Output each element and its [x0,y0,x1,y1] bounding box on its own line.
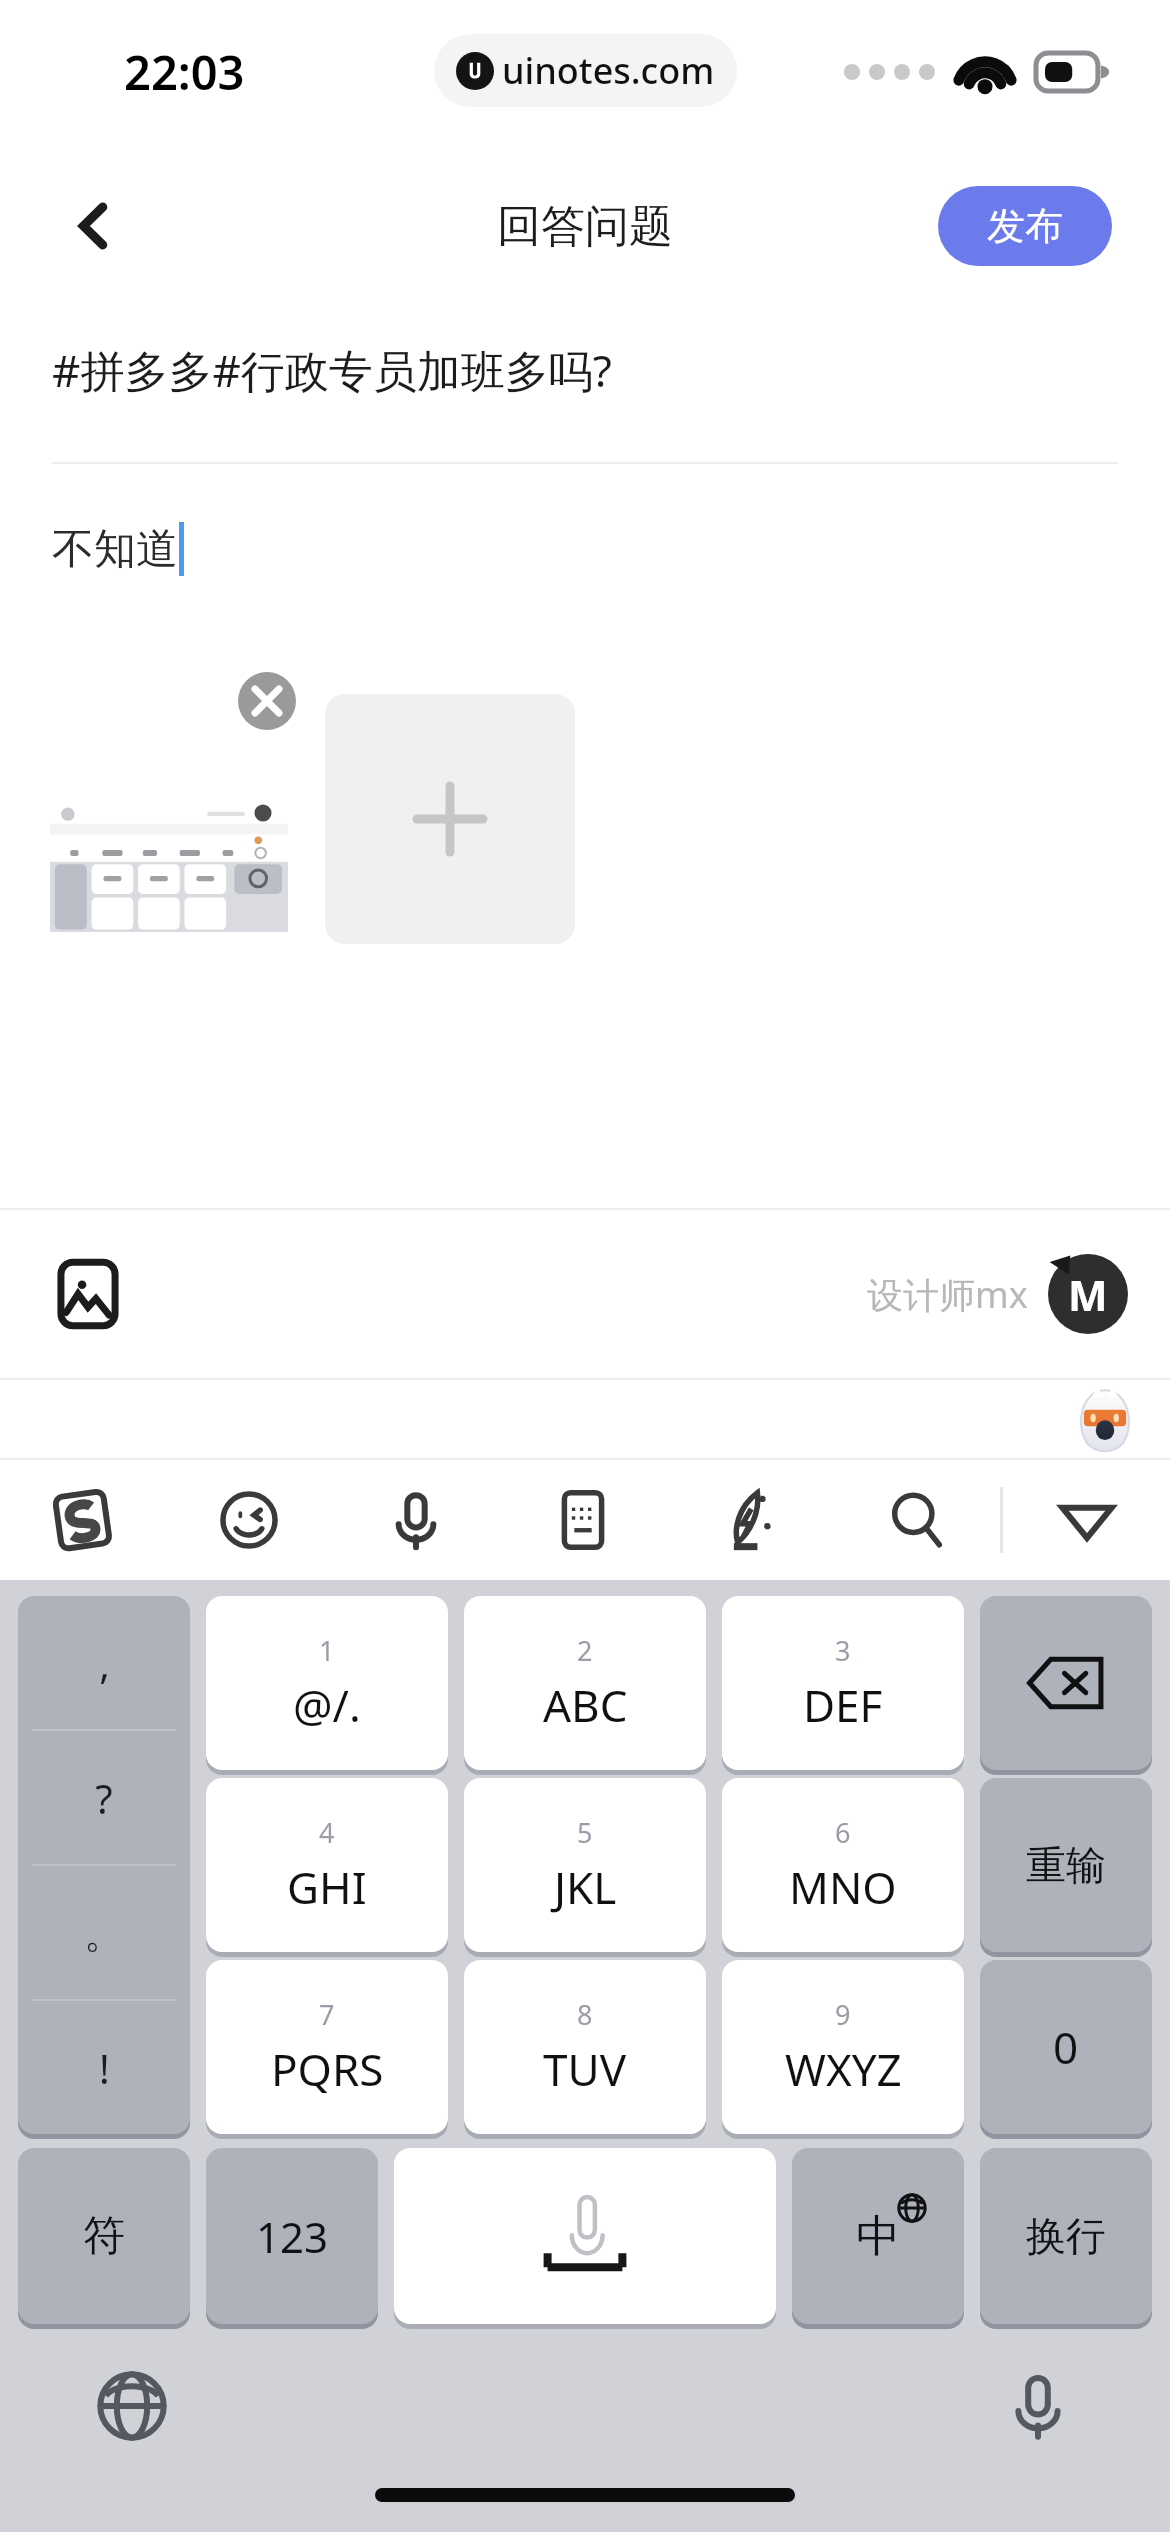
staticText: 9 [835,1996,851,2033]
staticText: 符 [83,2210,125,2263]
staticText: 4 [319,1814,335,1851]
staticText: ABC [543,1675,628,1735]
button[interactable] [980,1596,1152,1770]
button[interactable]: 返回 [46,178,142,274]
staticText: 8 [577,1996,593,2033]
staticText: 重输 [1026,1840,1106,1890]
button[interactable]: 收起键盘 [1003,1460,1170,1580]
button[interactable]: 输入法助手 [1072,1386,1138,1452]
button[interactable]: 7 [206,1960,448,2134]
button[interactable]: 手写 [666,1460,833,1580]
staticText: 。 [84,1908,124,1958]
staticText: @/. [293,1675,361,1735]
button[interactable]: 语音输入 [332,1460,499,1580]
staticText: GHI [287,1857,367,1917]
button[interactable]: 8 [464,1960,706,2134]
button[interactable]: 2 [464,1596,706,1770]
button[interactable]: 语音输入 [990,2358,1086,2454]
staticText: 3 [835,1632,851,1669]
button[interactable]: 键盘设置 [499,1460,666,1580]
button[interactable]: 删除图片 [238,672,296,730]
staticText: JKL [554,1857,617,1917]
staticText: 123 [256,2208,329,2265]
button[interactable]: 插入图片 [40,1246,136,1342]
button[interactable]: 123 [206,2148,378,2324]
button[interactable]: #拼多多#行政专员加班多吗? [52,340,612,400]
button[interactable]: 4 [206,1778,448,1952]
staticText: PQRS [271,2039,384,2099]
staticText: 中 [856,2209,900,2264]
button[interactable]: 已选图片 [50,694,288,932]
button[interactable]: 添加图片 [325,694,575,944]
staticText: 换行 [1026,2211,1106,2261]
button[interactable]: 1 [206,1596,448,1770]
staticText: 6 [835,1814,851,1851]
staticText: MNO [789,1857,897,1917]
staticText: 1 [319,1632,335,1669]
button[interactable]: 重输 [980,1778,1152,1952]
button[interactable]: 9 [722,1960,964,2134]
button[interactable]: 符 [18,2148,190,2324]
button[interactable]: 6 [722,1778,964,1952]
button[interactable]: 切换输入法 [84,2358,180,2454]
staticText: ? [95,1771,113,1825]
button[interactable]: 发布 [938,186,1112,266]
button[interactable]: 搜狗输入法 [0,1460,166,1580]
staticText: , [99,1636,110,1690]
button[interactable]: 0 [980,1960,1152,2134]
staticText: 0 [1053,2017,1079,2077]
staticText: 回答问题 [497,199,673,254]
button[interactable]: 中 [792,2148,964,2324]
staticText: 不知道 [52,523,178,576]
button[interactable]: 表情 [166,1460,332,1580]
button[interactable]: 搜索 [833,1460,1000,1580]
staticText: WXYZ [785,2039,902,2099]
button[interactable]: 3 [722,1596,964,1770]
staticText: DEF [803,1675,883,1735]
staticText: 7 [319,1996,335,2033]
button[interactable] [394,2148,776,2324]
button[interactable]: 换行 [980,2148,1152,2324]
staticText: 设计师mx [867,1270,1028,1319]
staticText: 22:03 [124,40,245,104]
button[interactable]: 5 [464,1778,706,1952]
staticText: TUV [543,2039,627,2099]
staticText: 5 [577,1814,593,1851]
staticText: M [1068,1266,1108,1323]
button[interactable]: , [18,1596,190,2134]
staticText: 2 [577,1632,593,1669]
staticText: ! [99,2041,110,2095]
staticText: 发布 [987,202,1063,250]
staticText: uinotes.com [502,46,715,95]
